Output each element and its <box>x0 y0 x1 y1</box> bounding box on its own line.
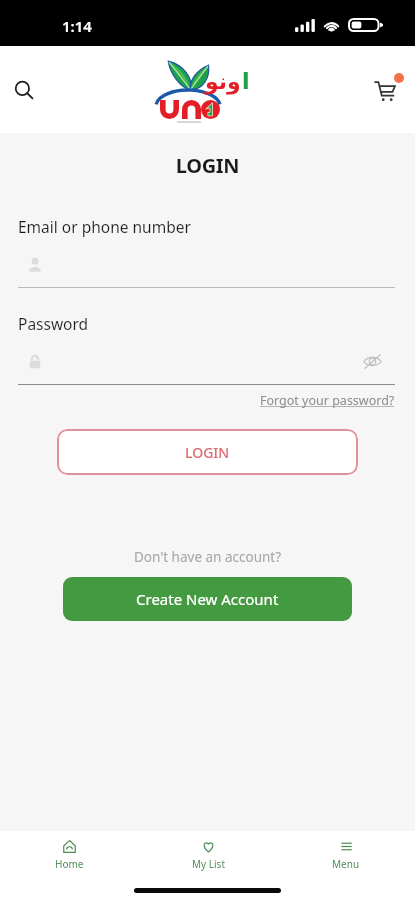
other: My List <box>202 840 215 853</box>
staticText: Home <box>55 857 84 871</box>
staticText: Password <box>18 313 89 334</box>
other: Home <box>63 840 76 853</box>
staticText: ونو <box>205 69 241 95</box>
staticText: ا <box>242 69 250 95</box>
staticText: My List <box>192 857 225 871</box>
other: Menu <box>340 840 353 853</box>
button[interactable]: Menu <box>277 831 415 879</box>
button[interactable]: Search <box>2 68 46 112</box>
button[interactable]: Forgot your password? <box>260 392 395 409</box>
button[interactable]: Show password <box>361 353 383 370</box>
button[interactable]: LOGIN <box>57 429 358 475</box>
staticText: 1:14 <box>62 16 92 36</box>
staticText: Email or phone number <box>18 216 191 237</box>
staticText: Create New Account <box>136 589 279 609</box>
staticText: LOGIN <box>0 152 415 179</box>
button[interactable]: Home <box>0 831 139 879</box>
button[interactable]: My List <box>139 831 277 879</box>
staticText: LOGIN <box>185 443 230 462</box>
button[interactable]: Create New Account <box>63 577 352 621</box>
button[interactable]: Cart <box>362 68 406 112</box>
staticText: Menu <box>332 857 360 871</box>
staticText: Don't have an account? <box>0 548 415 566</box>
